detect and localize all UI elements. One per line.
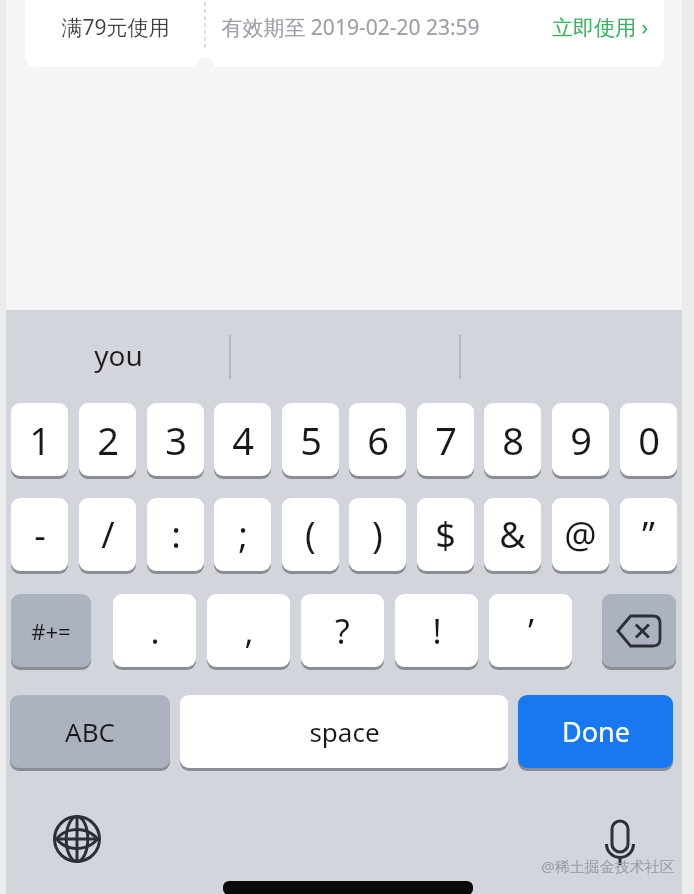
staticText: 满79元使用 (61, 13, 170, 42)
staticText: $ (435, 510, 456, 559)
button[interactable]: 3 (147, 403, 204, 476)
button[interactable]: #+= (11, 594, 91, 667)
staticText: 4 (232, 414, 254, 466)
staticText: , (244, 608, 254, 654)
staticText: ( (305, 510, 316, 559)
button[interactable]: 1 (11, 403, 68, 476)
staticText: - (34, 510, 46, 559)
button[interactable]: ; (214, 498, 271, 571)
staticText: @稀土掘金技术社区 (541, 856, 675, 876)
button[interactable]: & (484, 498, 541, 571)
staticText: ” (642, 510, 655, 559)
staticText: ’ (528, 608, 534, 654)
button[interactable]: : (147, 498, 204, 571)
button[interactable]: ( (282, 498, 339, 571)
button[interactable] (53, 815, 101, 863)
staticText: 7 (435, 414, 457, 466)
button[interactable]: - (11, 498, 68, 571)
staticText: . (150, 608, 160, 654)
button[interactable]: 立即使用 › (535, 0, 664, 55)
button[interactable] (602, 594, 676, 667)
staticText: 1 (29, 414, 51, 466)
staticText: #+= (31, 616, 71, 646)
staticText: ; (238, 510, 248, 559)
button[interactable]: space (180, 695, 508, 768)
staticText: you (94, 336, 143, 374)
button[interactable]: ’ (489, 594, 572, 667)
button[interactable]: . (113, 594, 196, 667)
staticText: ! (432, 608, 442, 654)
button[interactable] (603, 821, 637, 867)
staticText: 2 (97, 414, 119, 466)
button[interactable]: 2 (79, 403, 136, 476)
staticText: Done (562, 713, 630, 750)
button[interactable]: ! (395, 594, 478, 667)
staticText: @ (564, 510, 597, 559)
staticText: ) (372, 510, 383, 559)
button[interactable]: Done (518, 695, 673, 768)
staticText: / (101, 510, 115, 559)
staticText: ABC (65, 714, 115, 749)
staticText: ? (335, 608, 350, 654)
staticText: & (499, 510, 526, 559)
button[interactable]: 7 (417, 403, 474, 476)
staticText: 3 (165, 414, 187, 466)
button[interactable]: @ (552, 498, 609, 571)
staticText: space (309, 714, 380, 749)
button[interactable]: 9 (552, 403, 609, 476)
button[interactable]: 8 (484, 403, 541, 476)
staticText: 5 (300, 414, 322, 466)
button[interactable]: ” (620, 498, 677, 571)
button[interactable]: 6 (349, 403, 406, 476)
button[interactable]: , (207, 594, 290, 667)
button[interactable]: ) (349, 498, 406, 571)
staticText: : (171, 510, 181, 559)
button[interactable]: 满79元使用 (25, 0, 664, 67)
button[interactable]: 4 (214, 403, 271, 476)
staticText: 6 (367, 414, 389, 466)
staticText: 9 (570, 414, 592, 466)
button[interactable]: ? (301, 594, 384, 667)
staticText: 有效期至 2019-02-20 23:59 (221, 13, 480, 42)
button[interactable]: ABC (10, 695, 170, 768)
staticText: 8 (502, 414, 524, 466)
button[interactable]: $ (417, 498, 474, 571)
button[interactable]: 5 (282, 403, 339, 476)
button[interactable]: you (6, 310, 231, 400)
staticText: 立即使用 › (552, 13, 648, 42)
button[interactable]: 0 (620, 403, 677, 476)
button[interactable]: / (79, 498, 136, 571)
staticText: 0 (638, 414, 660, 466)
